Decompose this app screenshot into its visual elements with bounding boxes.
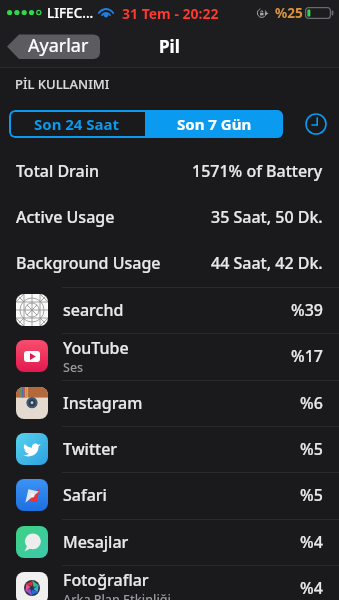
staticText: YouTube [63, 337, 129, 359]
staticText: Total Drain [16, 160, 100, 182]
staticText: Son 24 Saat [34, 114, 120, 134]
staticText: Instagram [63, 392, 143, 414]
button[interactable]: Safari [0, 472, 339, 518]
staticText: %4 [300, 577, 323, 599]
staticText: %5 [300, 484, 323, 506]
staticText: Twitter [63, 438, 118, 460]
button[interactable]: Background Usage [0, 240, 339, 286]
button[interactable]: Show usage by time [303, 111, 329, 137]
staticText: searchd [63, 299, 124, 321]
button[interactable]: Mesajlar [0, 519, 339, 565]
staticText: Son 7 Gün [177, 114, 252, 134]
button[interactable]: Son 7 Gün [145, 110, 283, 138]
staticText: 1571% of Battery [192, 160, 323, 182]
button[interactable]: Fotoğraflar [0, 565, 339, 600]
staticText: %6 [300, 392, 323, 414]
staticText: Active Usage [16, 206, 115, 228]
staticText: Fotoğraflar [63, 569, 149, 591]
button[interactable]: searchd [0, 287, 339, 333]
button[interactable]: Total Drain [0, 148, 339, 194]
staticText: PİL KULLANIMI [15, 75, 110, 93]
button[interactable]: Son 24 Saat [9, 110, 145, 138]
button[interactable]: Ayarlar [7, 34, 100, 59]
button[interactable]: Twitter [0, 426, 339, 472]
staticText: 44 Saat, 42 Dk. [211, 252, 323, 274]
staticText: Mesajlar [63, 531, 129, 553]
staticText: Background Usage [16, 252, 161, 274]
button[interactable]: Instagram [0, 380, 339, 426]
staticText: 35 Saat, 50 Dk. [211, 206, 323, 228]
staticText: Safari [63, 484, 107, 506]
staticText: %5 [300, 438, 323, 460]
staticText: %4 [300, 531, 323, 553]
staticText: Ses [63, 359, 84, 376]
staticText: Pil [159, 35, 180, 58]
button[interactable]: Active Usage [0, 194, 339, 240]
button[interactable]: YouTube [0, 333, 339, 379]
staticText: Arka Plan Etkinliği [63, 591, 171, 600]
staticText: %17 [291, 345, 323, 367]
staticText: %25 [275, 4, 303, 22]
staticText: %39 [291, 299, 323, 321]
staticText: LIFEC... [47, 4, 94, 22]
staticText: Ayarlar [28, 33, 89, 58]
staticText: 31 Tem - 20:22 [122, 4, 219, 23]
